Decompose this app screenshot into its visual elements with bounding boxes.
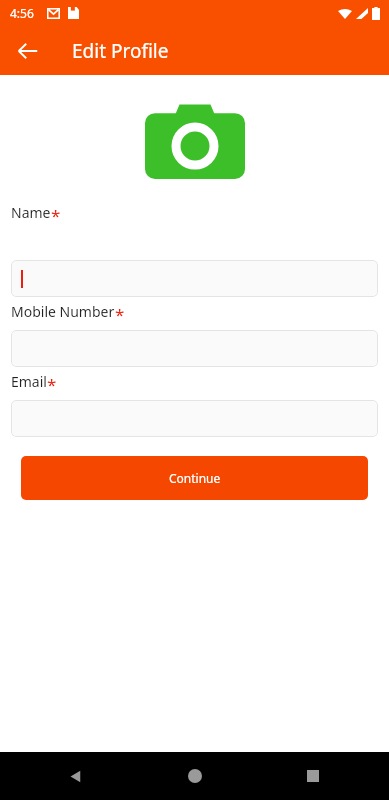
button[interactable]: [11, 400, 378, 437]
button[interactable]: [11, 330, 378, 367]
staticText: Name: [11, 203, 51, 222]
staticText: Email: [11, 372, 47, 391]
staticText: *: [47, 373, 57, 396]
staticText: *: [115, 303, 125, 326]
button[interactable]: Back: [8, 31, 48, 71]
staticText: Edit Profile: [72, 38, 169, 64]
button[interactable]: [11, 260, 378, 297]
button[interactable]: Change profile photo: [145, 102, 245, 179]
button[interactable]: Home: [177, 758, 213, 794]
staticText: *: [51, 204, 61, 227]
staticText: Continue: [169, 470, 221, 486]
staticText: 4:56: [10, 5, 34, 21]
button[interactable]: Recent apps: [295, 758, 331, 794]
staticText: Mobile Number: [11, 302, 115, 321]
button[interactable]: Back: [58, 758, 94, 794]
button[interactable]: Continue: [21, 456, 368, 500]
